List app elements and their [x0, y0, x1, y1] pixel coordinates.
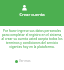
staticText: Por favor ingrese sus datos personales p… — [1, 29, 63, 49]
other: Account — [22, 5, 27, 11]
staticText: Crear cuenta — [0, 12, 64, 18]
button[interactable]: Ver mas — [15, 59, 31, 63]
staticText: Ver mas — [19, 59, 31, 63]
